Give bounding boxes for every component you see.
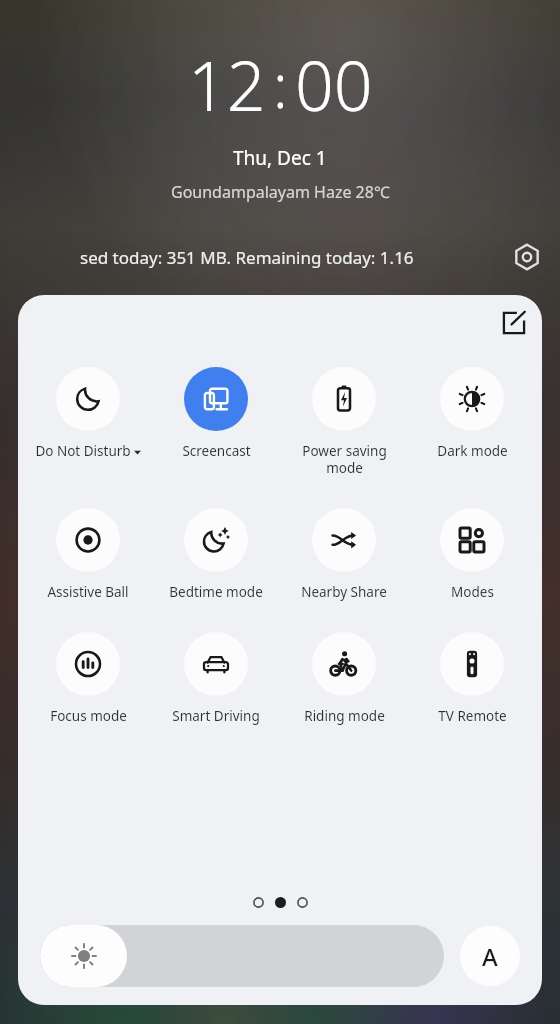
button[interactable]: TV Remote xyxy=(408,632,536,725)
button[interactable]: Power saving mode xyxy=(280,367,408,477)
staticText: Power saving mode xyxy=(302,442,387,477)
staticText: Smart Driving xyxy=(172,707,260,725)
staticText: Assistive Ball xyxy=(47,583,129,601)
button[interactable]: Settings xyxy=(494,235,560,279)
button[interactable]: Edit quick settings xyxy=(486,295,542,351)
staticText: 12 xyxy=(188,38,266,131)
button[interactable]: Do Not Disturb xyxy=(24,367,152,460)
staticText: sed today: 351 MB. Remaining today: 1.16 xyxy=(80,246,414,269)
button[interactable]: Assistive Ball xyxy=(24,508,152,601)
staticText: Modes xyxy=(451,583,494,601)
staticText: Focus mode xyxy=(50,707,127,725)
staticText: Screencast xyxy=(182,442,251,460)
staticText: Do Not Disturb xyxy=(35,442,131,460)
staticText: Goundampalayam Haze 28℃ xyxy=(171,181,390,203)
staticText: : xyxy=(273,44,288,126)
staticText: TV Remote xyxy=(438,707,507,725)
staticText: A xyxy=(482,940,498,973)
button[interactable]: sed today: 351 MB. Remaining today: 1.16 xyxy=(0,235,494,279)
button[interactable]: Brightness xyxy=(40,925,444,987)
button[interactable]: Dark mode xyxy=(408,367,536,460)
button[interactable]: Smart Driving xyxy=(152,632,280,725)
button[interactable]: Nearby Share xyxy=(280,508,408,601)
staticText: Bedtime mode xyxy=(169,583,263,601)
button[interactable]: Auto brightness xyxy=(460,926,520,986)
button[interactable]: Bedtime mode xyxy=(152,508,280,601)
button[interactable]: Screencast xyxy=(152,367,280,460)
staticText: Riding mode xyxy=(304,707,385,725)
staticText: 00 xyxy=(295,38,373,131)
staticText: Nearby Share xyxy=(301,583,387,601)
button[interactable]: Modes xyxy=(408,508,536,601)
staticText: Thu, Dec 1 xyxy=(233,145,327,171)
button[interactable]: Riding mode xyxy=(280,632,408,725)
button[interactable]: Focus mode xyxy=(24,632,152,725)
staticText: Dark mode xyxy=(437,442,508,460)
